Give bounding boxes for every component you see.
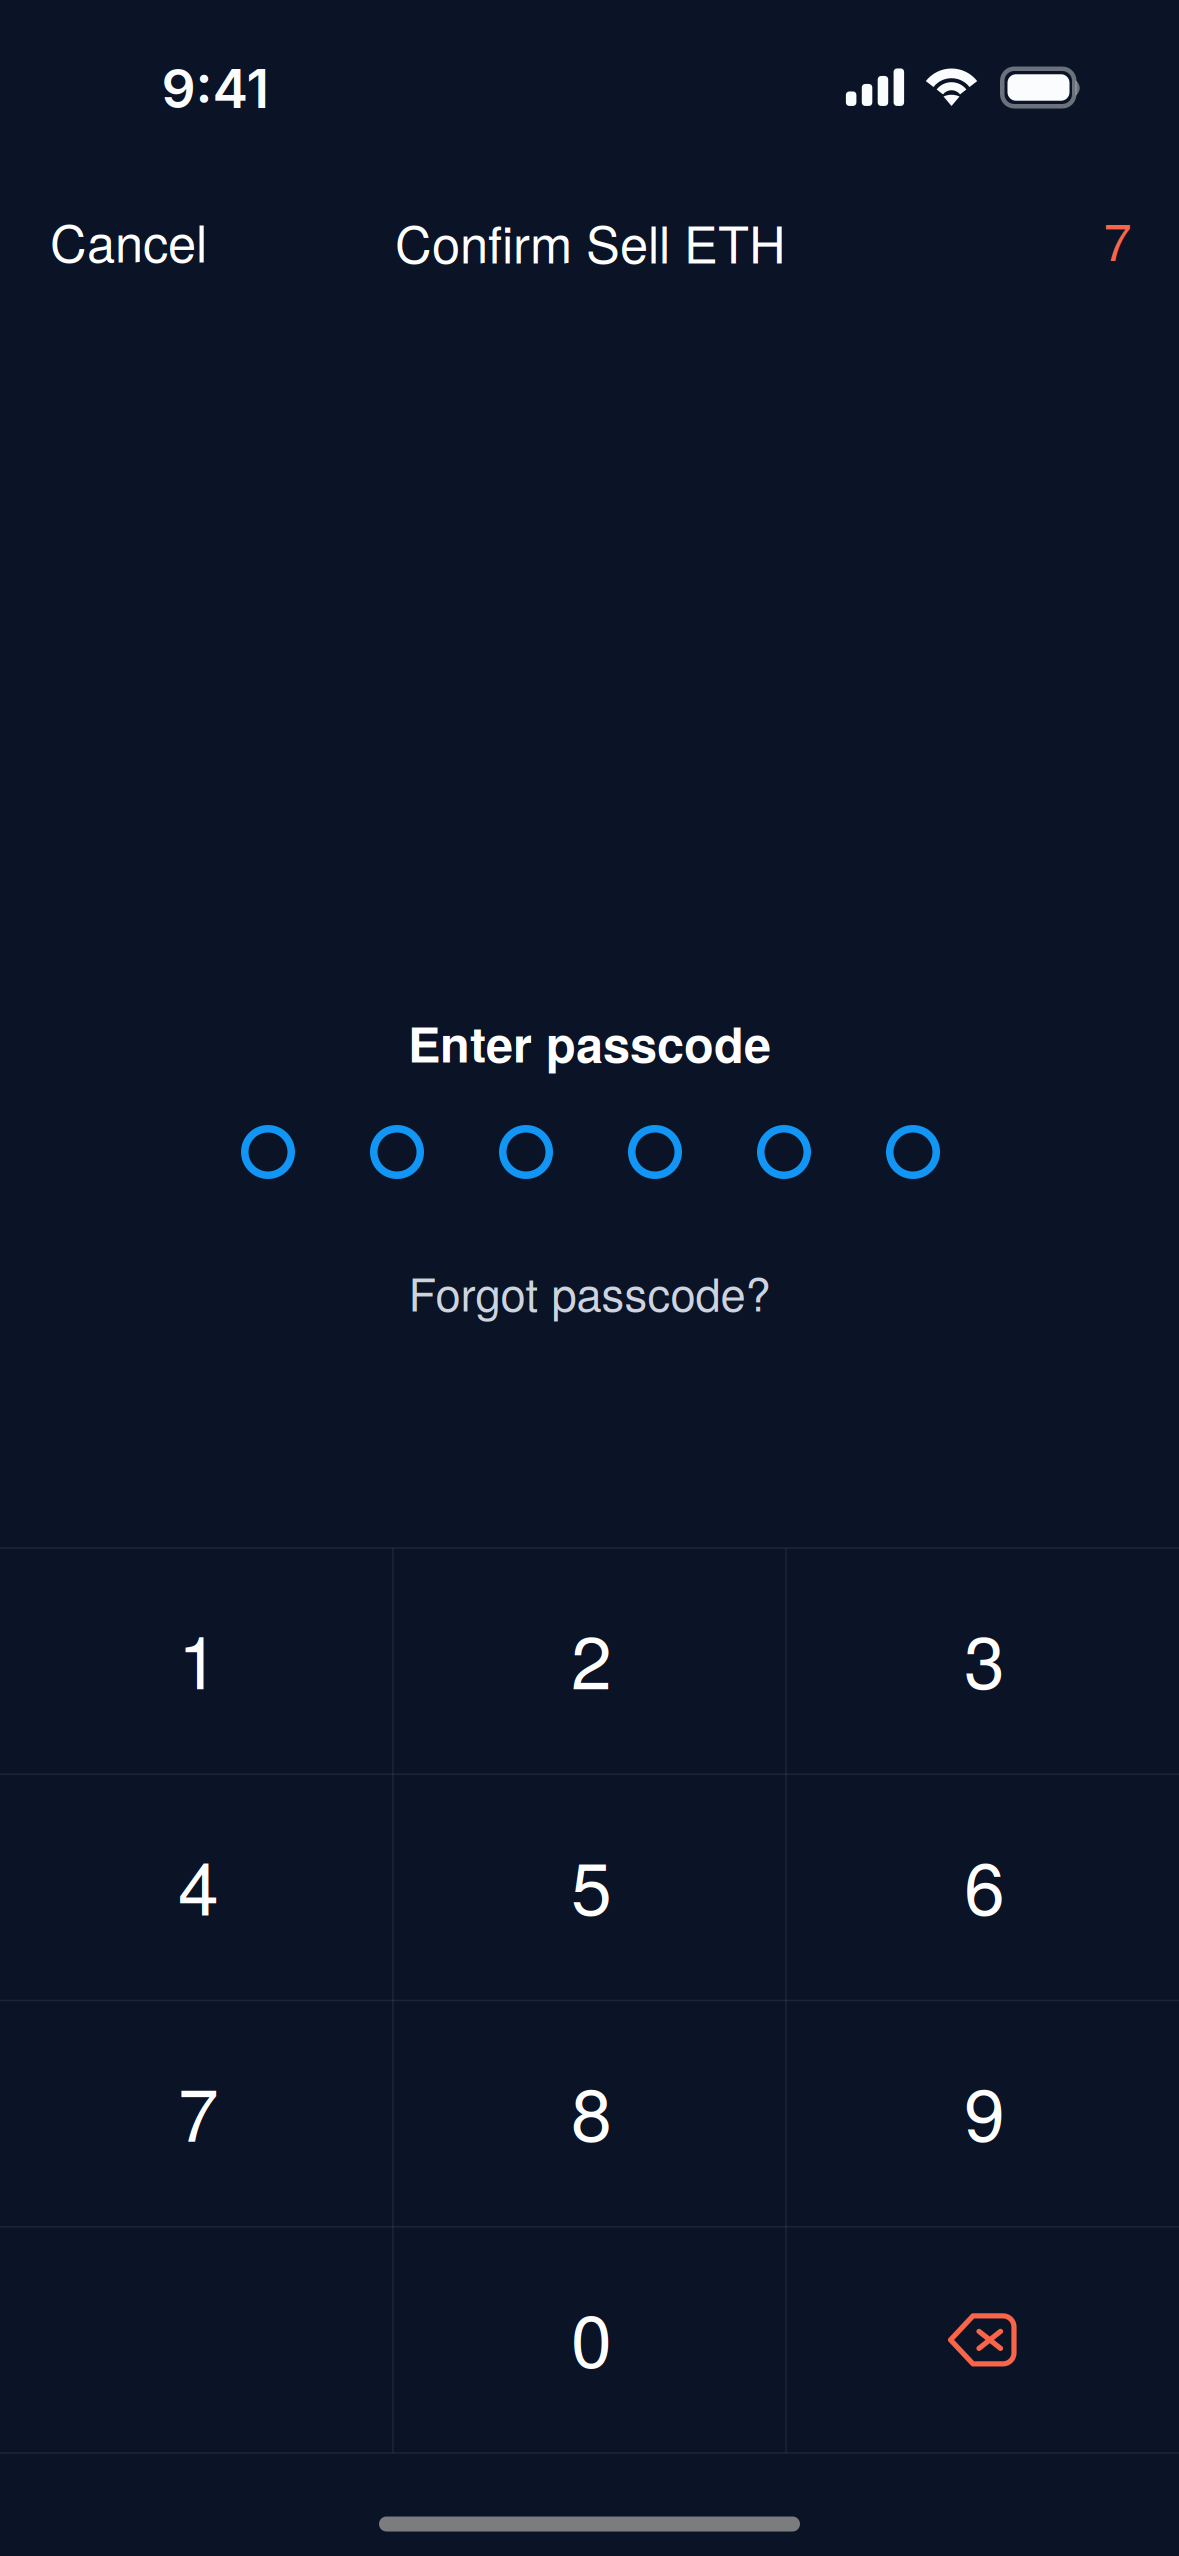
staticText: Forgot passcode? [408,1259,770,1324]
button[interactable]: 5 [393,1774,786,2000]
button[interactable]: 9 [786,2000,1179,2227]
button[interactable]: Cancel [0,188,250,292]
staticText: 9 [964,2058,1005,2163]
button[interactable]: 3 [786,1548,1179,1774]
button[interactable]: 7 [1021,187,1179,291]
button[interactable]: 6 [786,1774,1179,2000]
staticText: Cancel [50,204,207,277]
staticText: 7 [1103,203,1131,275]
staticText: 9:41 [161,56,269,121]
staticText: 6 [964,1831,1005,1936]
staticText: 8 [571,2058,612,2163]
staticText: 7 [178,2058,219,2163]
staticText: 4 [178,1831,219,1936]
staticText: 5 [571,1831,612,1936]
button[interactable]: 4 [0,1774,393,2000]
staticText: 0 [571,2284,612,2389]
staticText: 3 [964,1605,1005,1710]
button[interactable]: 1 [0,1548,393,1774]
staticText: 2 [571,1605,612,1710]
button[interactable]: 7 [0,2000,393,2227]
staticText: Confirm Sell ETH [395,205,786,278]
button[interactable]: 2 [393,1548,786,1774]
staticText: Enter passcode [408,1008,771,1077]
staticText: 1 [178,1605,219,1710]
button[interactable]: 0 [393,2227,786,2453]
button[interactable]: Delete [786,2227,1179,2453]
button[interactable]: Forgot passcode? [379,1250,799,1334]
button[interactable]: 8 [393,2000,786,2227]
